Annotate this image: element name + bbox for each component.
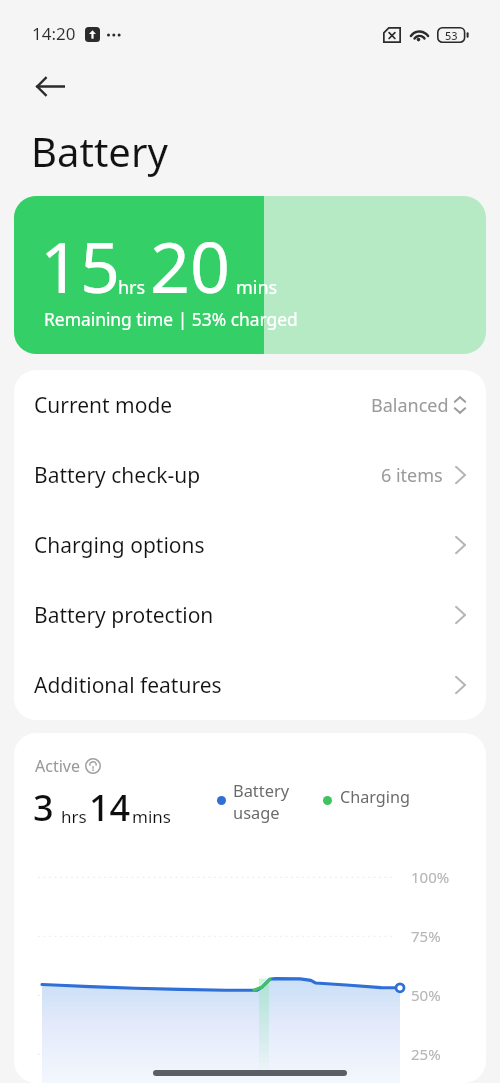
button[interactable]: Charging options [14,510,486,580]
other: Help [85,758,101,774]
staticText: mins [132,805,171,828]
staticText: 14 [89,783,131,832]
button[interactable]: Active [14,733,486,1083]
staticText: 100% [411,867,450,887]
button[interactable]: Battery check-up [14,440,486,510]
button[interactable]: Battery protection [14,580,486,650]
staticText: Battery [31,124,168,178]
staticText: Additional features [34,671,222,700]
button[interactable]: Additional features [14,650,486,720]
staticText: 50% [411,985,441,1005]
staticText: hrs [118,275,146,300]
staticText: Charging options [34,531,205,560]
staticText: Current mode [34,391,173,420]
staticText: Charging [340,786,410,808]
staticText: Battery usage [233,779,290,823]
staticText: Battery check-up [34,461,201,490]
staticText: mins [236,275,278,300]
button[interactable]: Current mode [14,370,486,440]
staticText: Battery protection [34,601,214,630]
staticText: 25% [411,1044,441,1064]
staticText: Remaining time | 53% charged [44,307,298,331]
staticText: hrs [61,805,87,828]
staticText: 6 items [381,463,443,488]
staticText: 3 [33,783,54,832]
button[interactable]: 15 [14,196,486,354]
staticText: 53 [445,28,458,43]
button[interactable]: Back [26,62,74,110]
staticText: Balanced [371,393,449,418]
staticText: 75% [411,926,441,946]
staticText: 14:20 [32,22,76,45]
staticText: Active [35,755,80,777]
staticText: 15 [40,218,121,313]
staticText: 20 [150,218,231,313]
